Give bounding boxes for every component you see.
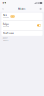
staticText: Show Previews — [3, 32, 14, 34]
staticText: Badges — [3, 23, 9, 25]
staticText: Banners — [3, 26, 9, 27]
staticText: 9:41 — [2, 2, 6, 4]
staticText: Alerts — [3, 14, 7, 16]
button[interactable]: Alerts — [1, 13, 43, 20]
staticText: Notifications — [18, 8, 26, 10]
button[interactable]: Badges — [1, 21, 43, 30]
staticText: Alert styles — [3, 39, 9, 41]
button[interactable]: Show Previews — [1, 31, 43, 36]
button[interactable]: Account — [39, 6, 44, 12]
staticText: NEW — [11, 16, 14, 17]
staticText: Sounds — [3, 17, 9, 18]
button[interactable]: Back — [0, 6, 4, 12]
staticText: ABOUT — [3, 37, 8, 39]
